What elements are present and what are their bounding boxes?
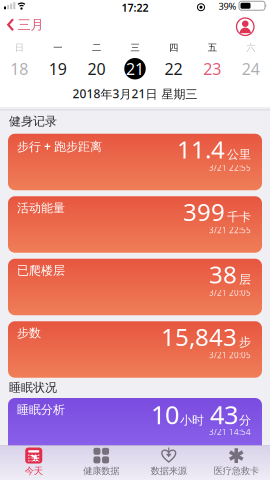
button[interactable]: 医疗急救卡 [202,448,270,477]
button[interactable]: 个人资料 [236,16,270,33]
staticText: 2018年3月21日 星期三 [72,86,197,102]
staticText: 健康数据 [83,465,119,477]
button[interactable]: 19 [39,58,77,79]
staticText: 健身记录 [9,114,57,129]
button[interactable]: 21 [116,58,154,79]
button[interactable]: 睡眠分析 [8,398,262,454]
staticText: 今天 [25,465,43,477]
staticText: 3/21 22:55 [209,225,251,235]
staticText: 一 [53,42,62,53]
staticText: 43 [210,397,238,431]
staticText: 三月 [17,16,43,33]
staticText: 六 [246,42,255,53]
staticText: 17:22 [121,1,148,15]
staticText: 小时 [180,413,204,427]
button[interactable]: 24 [231,58,270,79]
button[interactable]: 20 [77,58,116,79]
staticText: 二 [92,42,101,53]
staticText: 11.4 [177,133,225,165]
staticText: 分 [239,413,251,427]
staticText: 19 [49,58,67,79]
staticText: 数据来源 [151,465,187,477]
staticText: 步 [239,335,251,349]
staticText: 21 [126,58,144,79]
staticText: 步数 [17,326,41,340]
staticText: 15,843 [161,321,237,353]
staticText: 10 [151,397,179,431]
button[interactable]: 返回三月 [0,16,43,33]
button[interactable]: 步行 + 跑步距离 [8,134,262,190]
staticText: 18 [10,58,28,79]
staticText: 399 [183,196,225,228]
staticText: 3/21 20:05 [209,287,251,298]
staticText: 38 [209,258,237,290]
button[interactable]: 今天 [0,448,67,477]
staticText: 睡眠状况 [9,380,57,395]
button[interactable]: 健康数据 [67,448,135,477]
staticText: 已爬楼层 [17,263,65,278]
staticText: 39% [218,0,236,12]
staticText: 三 [130,42,139,53]
button[interactable]: 已爬楼层 [8,259,262,315]
staticText: 公里 [227,147,251,162]
button[interactable]: 23 [193,58,231,79]
button[interactable]: 18 [0,58,39,79]
button[interactable]: 活动能量 [8,196,262,253]
staticText: 3/21 20:05 [209,350,251,360]
staticText: 四 [169,42,178,53]
staticText: 日 [15,42,24,53]
button[interactable]: 22 [154,58,193,79]
staticText: 千卡 [227,210,251,224]
staticText: 步行 + 跑步距离 [17,138,102,154]
staticText: 24 [242,58,260,79]
staticText: 3/21 22:55 [209,162,251,173]
button[interactable]: 数据来源 [135,448,202,477]
staticText: 活动能量 [17,201,65,215]
staticText: 23 [203,58,221,79]
button[interactable]: 步数 [8,321,262,378]
staticText: 22 [165,58,183,79]
staticText: 层 [239,272,251,287]
staticText: 五 [208,42,217,53]
staticText: 医疗急救卡 [214,465,259,477]
staticText: 3/21 14:54 [209,427,251,437]
staticText: 20 [87,58,105,79]
staticText: 睡眠分析 [17,402,65,417]
